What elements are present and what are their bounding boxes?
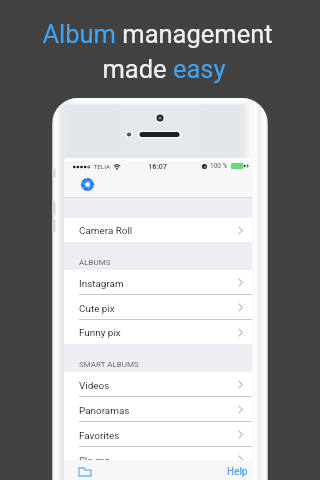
staticText: 100 % bbox=[210, 162, 228, 170]
button[interactable]: Cute pix bbox=[64, 295, 252, 320]
staticText: Funny pix bbox=[79, 327, 121, 339]
staticText: TELIA bbox=[94, 163, 110, 170]
staticText: Cute pix bbox=[79, 303, 115, 315]
button[interactable]: Refresh bbox=[81, 178, 94, 191]
button[interactable]: Panoramas bbox=[64, 397, 252, 422]
button[interactable]: Folders bbox=[78, 466, 92, 477]
staticText: ALBUMS bbox=[79, 258, 111, 267]
button[interactable]: Instagram bbox=[64, 270, 252, 295]
button[interactable]: Funny pix bbox=[64, 320, 252, 344]
staticText: Favorites bbox=[79, 430, 120, 442]
staticText: made easy bbox=[102, 54, 226, 84]
button[interactable]: Help bbox=[227, 466, 248, 478]
staticText: Album management bbox=[42, 19, 273, 49]
button[interactable]: Camera Roll bbox=[64, 218, 252, 242]
staticText: Camera Roll bbox=[79, 225, 133, 237]
staticText: SMART ALBUMS bbox=[79, 360, 139, 369]
staticText: Slo-mo bbox=[79, 455, 110, 467]
staticText: 16:07 bbox=[148, 162, 168, 171]
staticText: Instagram bbox=[79, 278, 124, 290]
staticText: Panoramas bbox=[79, 405, 130, 417]
staticText: Videos bbox=[79, 380, 110, 392]
button[interactable]: Favorites bbox=[64, 422, 252, 447]
button[interactable]: Videos bbox=[64, 372, 252, 397]
button[interactable]: Slo-mo bbox=[64, 447, 252, 472]
